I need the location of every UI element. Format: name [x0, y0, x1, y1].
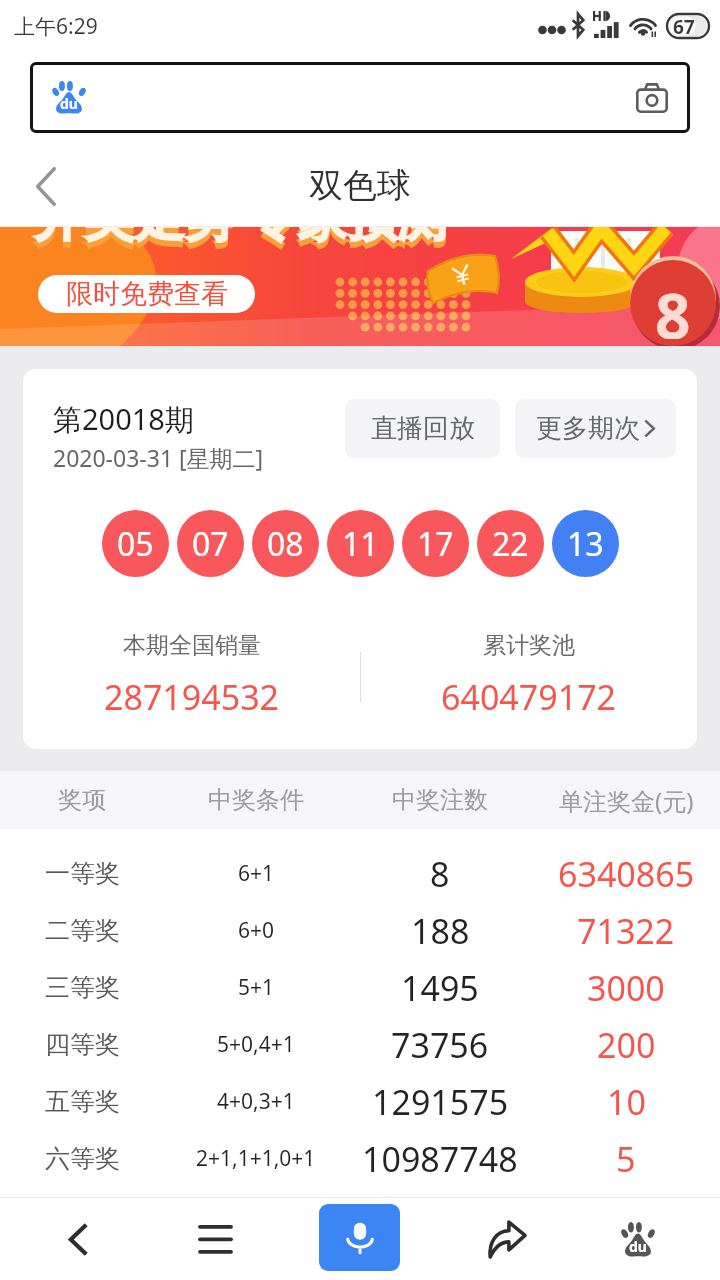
staticText: 一等奖: [45, 858, 120, 889]
button[interactable]: du: [30, 62, 690, 133]
staticText: 五等奖: [45, 1086, 120, 1117]
staticText: 更多期次: [536, 412, 640, 445]
staticText: 1291575: [372, 1079, 509, 1125]
staticText: 5: [616, 1136, 636, 1182]
staticText: 第20018期: [53, 399, 194, 439]
button[interactable]: 13: [552, 510, 619, 577]
staticText: 10: [607, 1079, 646, 1125]
staticText: 73756: [391, 1022, 489, 1068]
staticText: 05: [117, 522, 154, 566]
staticText: 71322: [577, 908, 675, 954]
staticText: 3000: [587, 965, 665, 1011]
staticText: 2020-03-31 [星期二]: [53, 442, 264, 473]
staticText: 6+1: [238, 859, 275, 888]
staticText: du: [60, 94, 78, 113]
button[interactable]: 一等奖: [0, 845, 720, 902]
staticText: 奖项: [58, 785, 106, 815]
staticText: 200: [597, 1022, 656, 1068]
staticText: 2+1,1+1,0+1: [196, 1144, 316, 1173]
button[interactable]: 17: [402, 510, 469, 577]
button[interactable]: Camera search: [623, 68, 681, 128]
button[interactable]: 四等奖: [0, 1016, 720, 1073]
staticText: 4+0,3+1: [217, 1087, 295, 1116]
staticText: 8: [655, 273, 691, 339]
staticText: 640479172: [441, 674, 617, 720]
button[interactable]: Menu: [150, 1198, 280, 1280]
button[interactable]: Voice search: [319, 1204, 400, 1271]
staticText: 5+0,4+1: [217, 1030, 295, 1059]
staticText: 188: [411, 908, 470, 954]
button[interactable]: 更多期次: [515, 399, 676, 458]
button[interactable]: 五等奖: [0, 1073, 720, 1130]
staticText: 6+0: [238, 916, 275, 945]
staticText: 限时免费查看: [66, 277, 228, 311]
button[interactable]: 11: [327, 510, 394, 577]
button[interactable]: 二等奖: [0, 902, 720, 959]
button[interactable]: 直播回放: [345, 399, 500, 458]
staticText: 11: [342, 522, 379, 566]
staticText: 中奖注数: [392, 785, 488, 815]
staticText: 单注奖金(元): [559, 784, 694, 817]
staticText: 07: [192, 522, 229, 566]
staticText: 17: [417, 522, 454, 566]
staticText: 四等奖: [45, 1029, 120, 1060]
staticText: 双色球: [309, 164, 411, 207]
staticText: du: [629, 1237, 647, 1256]
staticText: 13: [567, 522, 604, 566]
staticText: 上午6:29: [14, 12, 98, 41]
staticText: 22: [492, 522, 529, 566]
button[interactable]: 限时免费查看: [38, 275, 255, 313]
staticText: 开奖走势 专家预测: [34, 227, 447, 256]
button[interactable]: 05: [102, 510, 169, 577]
staticText: 六等奖: [45, 1143, 120, 1174]
button[interactable]: 六等奖: [0, 1130, 720, 1187]
staticText: 08: [267, 522, 304, 566]
staticText: 1495: [401, 965, 479, 1011]
staticText: 67: [673, 14, 695, 40]
button[interactable]: 22: [477, 510, 544, 577]
staticText: 6340865: [558, 851, 695, 897]
staticText: 8: [430, 851, 450, 897]
button[interactable]: 08: [252, 510, 319, 577]
button[interactable]: Share: [430, 1198, 580, 1280]
staticText: 直播回放: [371, 412, 475, 445]
button[interactable]: 三等奖: [0, 959, 720, 1016]
button[interactable]: 07: [177, 510, 244, 577]
staticText: 三等奖: [45, 972, 120, 1003]
button[interactable]: Back: [0, 145, 90, 227]
staticText: 二等奖: [45, 915, 120, 946]
staticText: 开奖走势 专家预测: [34, 227, 447, 250]
staticText: 5+1: [238, 973, 275, 1002]
staticText: 287194532: [104, 674, 280, 720]
staticText: 累计奖池: [483, 631, 575, 660]
button[interactable]: Baidu home: [580, 1198, 695, 1280]
staticText: 10987748: [362, 1136, 518, 1182]
staticText: 中奖条件: [208, 785, 304, 815]
button[interactable]: Back: [0, 1198, 150, 1280]
staticText: 本期全国销量: [123, 631, 261, 660]
